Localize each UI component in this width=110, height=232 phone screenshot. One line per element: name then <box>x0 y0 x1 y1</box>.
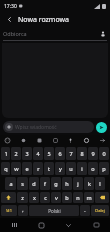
button[interactable]: s <box>17 177 28 190</box>
button[interactable]: z <box>17 192 28 203</box>
button[interactable]: Send <box>96 122 107 133</box>
button[interactable]: 8 <box>77 147 87 160</box>
button[interactable]: p <box>99 162 109 175</box>
staticText: Polski <box>48 208 61 214</box>
staticText: 3 <box>25 150 29 157</box>
button[interactable]: t <box>44 162 54 175</box>
staticText: , <box>22 207 24 214</box>
button[interactable]: a <box>5 177 16 190</box>
staticText: n <box>76 194 80 201</box>
button[interactable]: Switch keyboard <box>91 220 101 230</box>
button[interactable]: m <box>84 192 94 203</box>
staticText: y <box>59 165 62 172</box>
button[interactable]: l <box>95 177 105 190</box>
staticText: Odbiorca <box>3 30 27 37</box>
staticText: Wpisz wiadomość <box>15 124 57 131</box>
button[interactable]: 7 <box>66 147 76 160</box>
button[interactable]: Keyboard tool <box>19 136 28 145</box>
button[interactable]: 0 <box>99 147 109 160</box>
staticText: d <box>32 180 36 187</box>
button[interactable]: Home <box>36 220 46 230</box>
button[interactable]: Recents <box>9 220 19 230</box>
button[interactable]: 2 <box>11 147 21 160</box>
button[interactable]: o <box>88 162 98 175</box>
button[interactable]: Hide keyboard <box>63 220 73 230</box>
button[interactable]: Odbiorca <box>3 27 107 40</box>
staticText: g <box>54 180 58 187</box>
staticText: e <box>25 165 29 172</box>
button[interactable]: c <box>40 192 50 203</box>
button[interactable]: 5 <box>44 147 54 160</box>
button[interactable]: Keyboard tool <box>82 136 91 145</box>
button[interactable]: Keyboard tool <box>66 136 75 145</box>
button[interactable]: k <box>84 177 94 190</box>
button[interactable]: Keyboard tool <box>51 136 60 145</box>
button[interactable]: j <box>73 177 83 190</box>
staticText: 1 <box>4 150 8 157</box>
staticText: l <box>99 180 101 187</box>
button[interactable]: d <box>29 177 39 190</box>
button[interactable]: h <box>62 177 72 190</box>
button[interactable]: q <box>1 162 10 175</box>
staticText: j <box>77 180 79 187</box>
button[interactable]: e <box>22 162 32 175</box>
button[interactable]: n <box>73 192 83 203</box>
staticText: 17:30 <box>4 3 17 10</box>
button[interactable]: 3 <box>22 147 32 160</box>
staticText: 9 <box>91 150 95 157</box>
button[interactable]: y <box>55 162 65 175</box>
staticText: 5 <box>47 150 51 157</box>
staticText: 2 <box>14 150 18 157</box>
button[interactable]: 9 <box>88 147 98 160</box>
staticText: p <box>102 165 106 172</box>
staticText: 6 <box>58 150 62 157</box>
other: Add attachment <box>5 123 13 131</box>
staticText: r <box>37 165 40 172</box>
staticText: z <box>21 194 24 201</box>
staticText: v <box>55 194 58 201</box>
staticText: !#1 <box>6 208 12 213</box>
button[interactable]: Polski <box>29 205 79 216</box>
staticText: h <box>65 180 69 187</box>
button[interactable]: , <box>18 205 28 216</box>
staticText: x <box>33 194 36 201</box>
button[interactable]: b <box>62 192 72 203</box>
button[interactable]: x <box>29 192 39 203</box>
button[interactable]: 6 <box>55 147 65 160</box>
button[interactable]: Back <box>4 14 15 25</box>
staticText: Dalej <box>95 208 105 213</box>
staticText: f <box>44 180 46 187</box>
staticText: m <box>86 194 92 201</box>
button[interactable]: v <box>51 192 61 203</box>
button[interactable]: Keyboard tool <box>98 136 107 145</box>
button[interactable]: u <box>66 162 76 175</box>
button[interactable]: Key <box>95 192 109 203</box>
staticText: 0 <box>102 150 106 157</box>
button[interactable]: !#1 <box>1 205 17 216</box>
button[interactable]: g <box>51 177 61 190</box>
staticText: w <box>14 165 19 172</box>
staticText: o <box>91 165 95 172</box>
button[interactable]: f <box>40 177 50 190</box>
button[interactable]: Add attachment <box>3 121 94 133</box>
button[interactable]: Keyboard tool <box>3 136 12 145</box>
button[interactable]: Dalej <box>91 205 109 216</box>
staticText: t <box>48 165 50 172</box>
button[interactable]: i <box>77 162 87 175</box>
button[interactable]: Keyboard tool <box>35 136 44 145</box>
staticText: 8 <box>80 150 84 157</box>
staticText: s <box>21 180 24 187</box>
staticText: k <box>88 180 91 187</box>
staticText: 7 <box>69 150 73 157</box>
staticText: Nowa rozmowa <box>18 15 69 25</box>
button[interactable]: 4 <box>33 147 43 160</box>
button[interactable]: w <box>11 162 21 175</box>
staticText: . <box>84 207 86 214</box>
button[interactable]: . <box>80 205 90 216</box>
button[interactable]: Choose contact <box>98 29 107 38</box>
staticText: a <box>9 180 13 187</box>
button[interactable]: Key <box>1 192 16 203</box>
button[interactable]: r <box>33 162 43 175</box>
staticText: 4 <box>36 150 40 157</box>
button[interactable]: 1 <box>1 147 10 160</box>
